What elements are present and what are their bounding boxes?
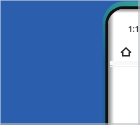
button[interactable]: Home <box>120 46 132 58</box>
button[interactable]: 1:1 <box>128 23 140 34</box>
staticText: 1:1 <box>128 23 140 34</box>
